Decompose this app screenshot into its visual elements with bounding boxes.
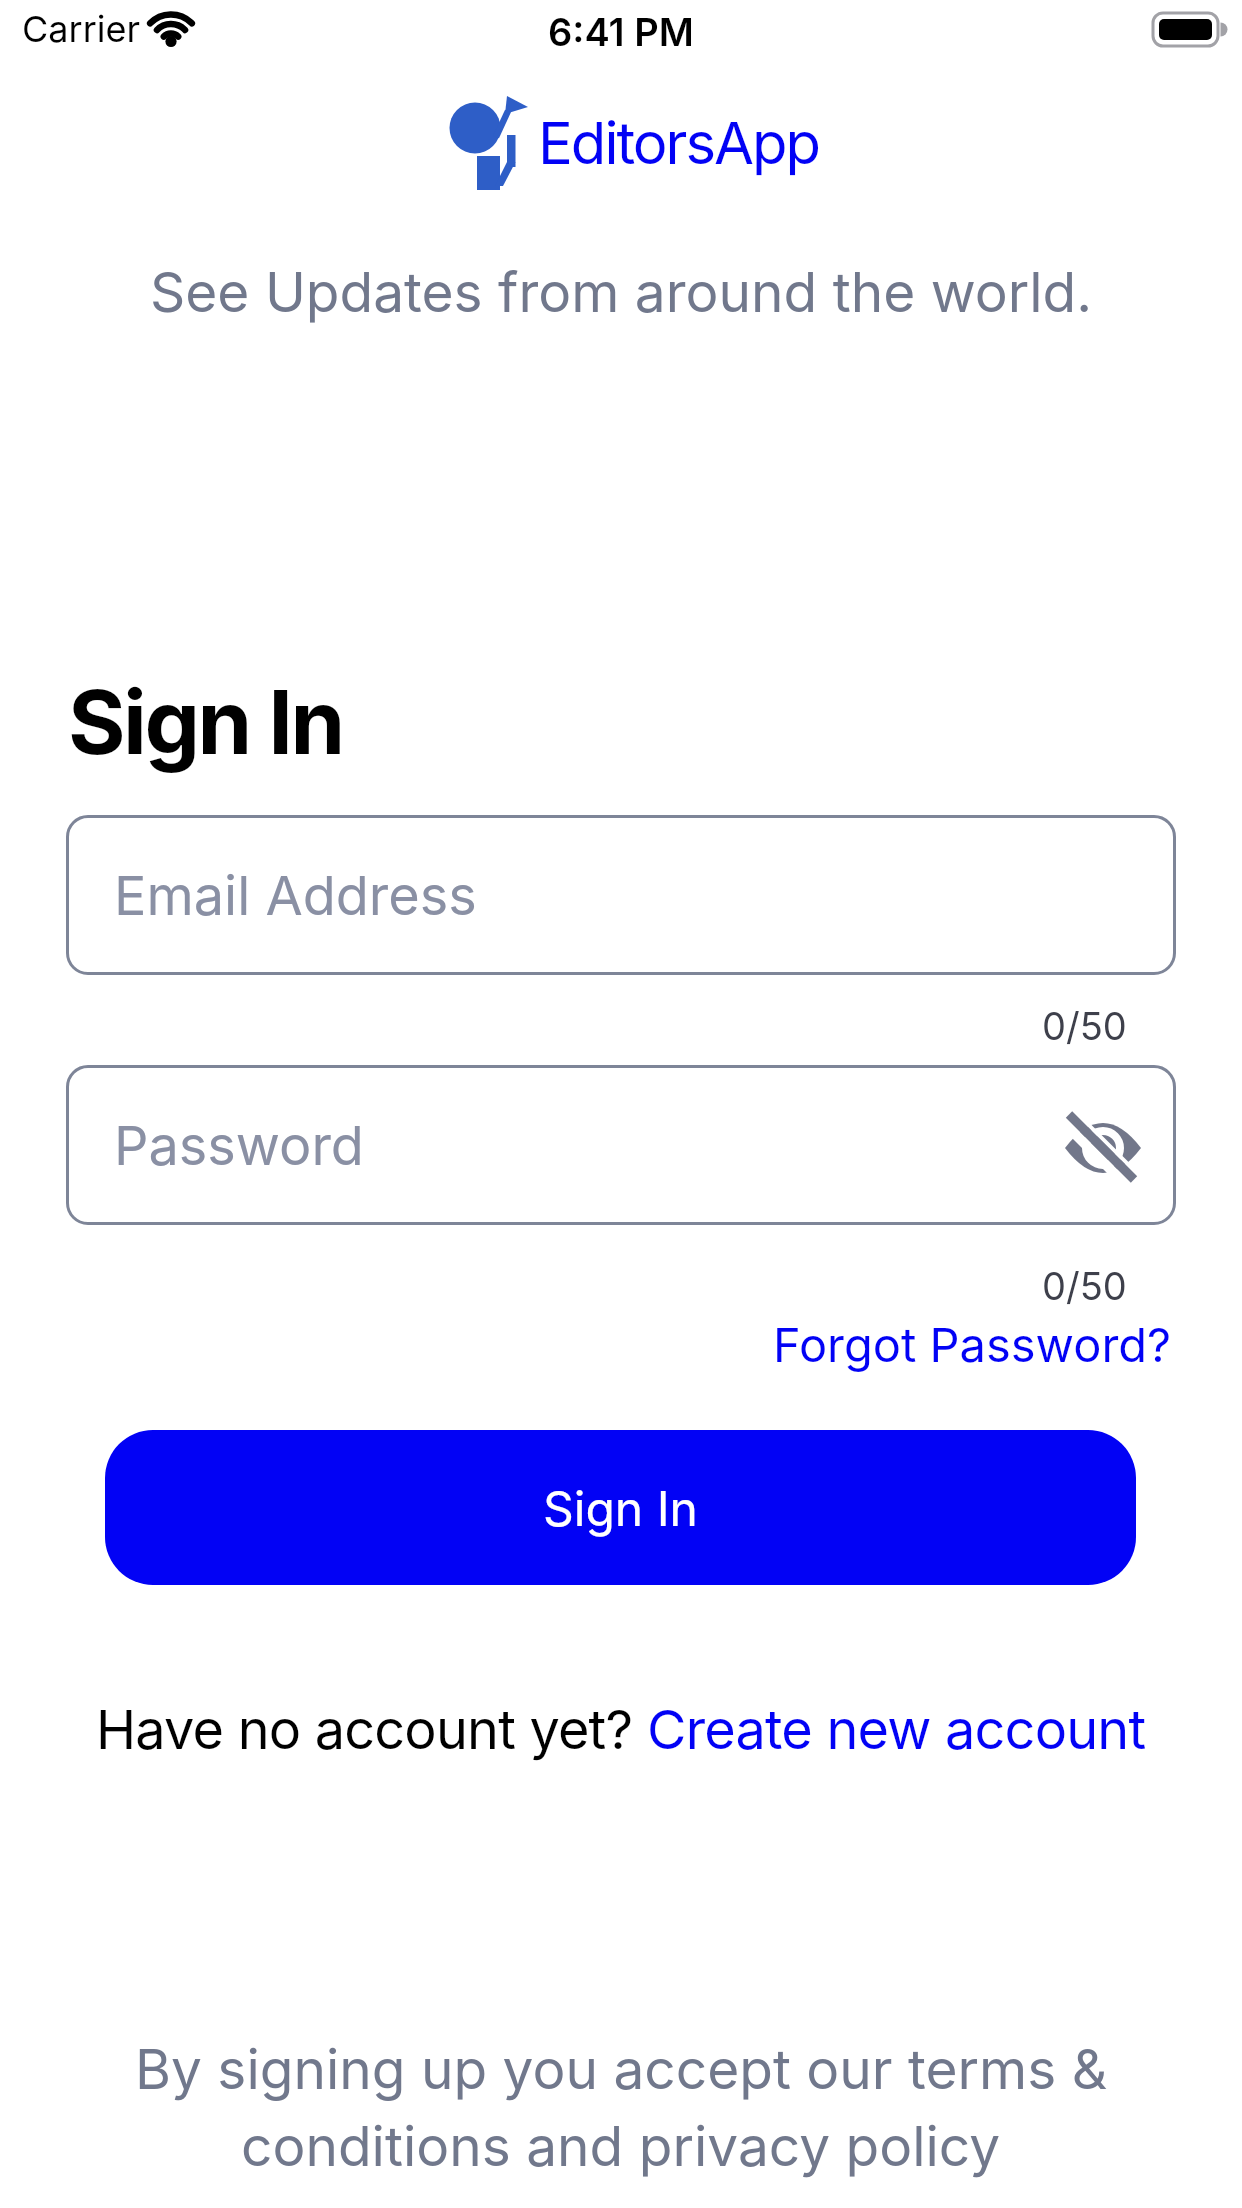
staticText: conditions and privacy policy (241, 2113, 1001, 2180)
button[interactable]: Password (66, 1065, 1176, 1225)
staticText: 6:41 PM (548, 9, 694, 55)
button[interactable] (1062, 1107, 1144, 1189)
staticText: Sign In (543, 1479, 698, 1537)
staticText: See Updates from around the world. (150, 259, 1093, 326)
staticText: Email Address (114, 863, 477, 928)
staticText: EditorsApp (538, 108, 820, 178)
staticText: Password (114, 1113, 364, 1178)
staticText: Forgot Password? (773, 1316, 1172, 1373)
staticText: Carrier (22, 7, 141, 51)
staticText: Sign In (68, 669, 343, 775)
button[interactable]: Create new account (647, 1697, 1146, 1762)
button[interactable]: Sign In (105, 1430, 1136, 1585)
staticText: 0/50 (1042, 1003, 1127, 1049)
staticText: 0/50 (1042, 1263, 1127, 1309)
button[interactable]: Forgot Password? (272, 1307, 1172, 1382)
staticText: By signing up you accept our terms & (135, 2036, 1108, 2103)
staticText: Have no account yet? (96, 1697, 647, 1762)
button[interactable]: Email Address (66, 815, 1176, 975)
